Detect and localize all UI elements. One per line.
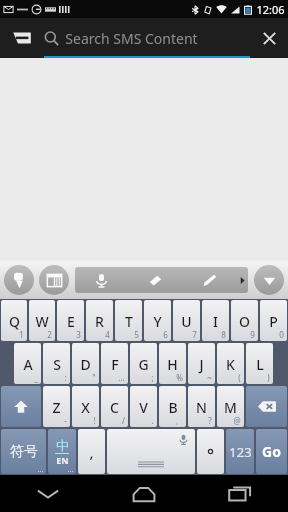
staticText: 、: [175, 416, 183, 426]
button[interactable]: I: [202, 300, 229, 341]
button[interactable]: Eraser: [128, 267, 182, 293]
staticText: !: [93, 415, 96, 426]
staticText: %: [176, 372, 183, 383]
button[interactable]: Q: [1, 300, 27, 341]
button[interactable]: H: [159, 343, 186, 384]
button[interactable]: Voice: [75, 267, 248, 293]
staticText: H: [167, 355, 178, 374]
staticText: …: [118, 372, 125, 383]
staticText: 中: [56, 437, 69, 453]
button[interactable]: Symbols: [1, 429, 46, 474]
staticText: Z: [52, 398, 61, 417]
staticText: ): [267, 372, 270, 383]
button[interactable]: J: [188, 343, 215, 384]
button[interactable]: Space: [107, 429, 195, 474]
button[interactable]: K: [217, 343, 244, 384]
staticText: 符号: [10, 443, 38, 461]
staticText: :: [64, 372, 67, 383]
button[interactable]: Recent apps: [192, 475, 288, 512]
staticText: F: [111, 355, 119, 374]
button[interactable]: More: [236, 267, 248, 293]
staticText: P: [269, 312, 278, 331]
button[interactable]: Backspace: [246, 386, 287, 427]
button[interactable]: Search SMS Content: [44, 18, 250, 58]
staticText: 7: [192, 329, 197, 340]
staticText: /: [122, 415, 125, 426]
staticText: R: [95, 312, 104, 331]
button[interactable]: U: [173, 300, 200, 341]
staticText: L: [256, 355, 264, 374]
button[interactable]: Layout: [39, 265, 69, 295]
button[interactable]: T: [115, 300, 142, 341]
button[interactable]: E: [57, 300, 84, 341]
button[interactable]: B: [159, 386, 186, 427]
button[interactable]: Voice: [75, 267, 128, 293]
staticText: O: [239, 312, 250, 331]
button[interactable]: F: [101, 343, 128, 384]
staticText: M: [224, 398, 237, 417]
staticText: S: [53, 355, 61, 374]
staticText: 4: [105, 329, 110, 340]
button[interactable]: Hide keyboard: [0, 475, 96, 512]
button[interactable]: Period: [197, 429, 224, 474]
staticText: _: [34, 372, 38, 383]
staticText: U: [181, 312, 192, 331]
staticText: Go: [262, 442, 281, 461]
staticText: ~: [207, 372, 212, 383]
button[interactable]: O: [231, 300, 258, 341]
staticText: C: [110, 398, 119, 417]
staticText: N: [196, 398, 207, 417]
staticText: 6: [163, 329, 168, 340]
button[interactable]: N: [188, 386, 215, 427]
button[interactable]: C: [101, 386, 128, 427]
button[interactable]: L: [246, 343, 273, 384]
button[interactable]: V: [130, 386, 157, 427]
button[interactable]: Comma: [78, 429, 105, 474]
button[interactable]: W: [29, 300, 55, 341]
staticText: Y: [153, 312, 162, 331]
staticText: 123: [229, 443, 252, 461]
button[interactable]: Go: [256, 429, 287, 474]
button[interactable]: S: [43, 343, 70, 384]
staticText: 3: [76, 329, 81, 340]
staticText: ;: [151, 372, 154, 383]
button[interactable]: Z: [43, 386, 70, 427]
staticText: Q: [9, 312, 20, 331]
staticText: 0: [279, 329, 284, 340]
staticText: ?: [208, 415, 212, 426]
staticText: 2: [47, 329, 52, 340]
staticText: .: [151, 415, 154, 426]
button[interactable]: A: [14, 343, 41, 384]
staticText: 1: [19, 329, 24, 340]
staticText: (: [238, 372, 241, 383]
button[interactable]: R: [86, 300, 113, 341]
staticText: K: [226, 355, 235, 374]
button[interactable]: Numbers: [226, 429, 254, 474]
staticText: V: [139, 398, 148, 417]
button[interactable]: G: [130, 343, 157, 384]
button[interactable]: M: [217, 386, 244, 427]
staticText: 12:06: [256, 2, 285, 17]
button[interactable]: D: [72, 343, 99, 384]
staticText: E: [67, 312, 75, 331]
staticText: G: [138, 355, 149, 374]
staticText: Search SMS Content: [65, 29, 198, 48]
staticText: EN: [56, 454, 69, 466]
button[interactable]: Home: [96, 475, 192, 512]
staticText: W: [35, 312, 49, 331]
staticText: 8: [221, 329, 226, 340]
staticText: 5: [134, 329, 139, 340]
button[interactable]: Hide keyboard: [254, 265, 284, 295]
button[interactable]: Pen: [182, 267, 236, 293]
button[interactable]: Menu: [0, 18, 44, 58]
button[interactable]: Clear: [250, 18, 288, 58]
button[interactable]: Y: [144, 300, 171, 341]
button[interactable]: Shift: [1, 386, 41, 427]
button[interactable]: Handwriting: [4, 265, 34, 295]
staticText: -: [64, 415, 67, 426]
button[interactable]: P: [260, 300, 287, 341]
button[interactable]: Language: [48, 429, 76, 474]
staticText: 9: [250, 329, 255, 340]
button[interactable]: X: [72, 386, 99, 427]
staticText: J: [199, 355, 204, 374]
